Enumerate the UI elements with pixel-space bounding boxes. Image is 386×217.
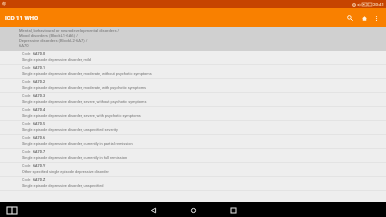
button[interactable]: Code [0,149,386,163]
staticText: 6A70.5 [33,122,46,126]
button[interactable]: Code [0,121,386,135]
staticText: Single episode depressive disorder, mode… [22,71,152,76]
staticText: Code [22,80,31,84]
staticText: 6A70.7 [33,150,46,154]
staticText: Single episode depressive disorder, curr… [22,141,133,146]
button[interactable]: Code [0,51,386,65]
staticText: 6A70.2 [33,80,46,84]
staticText: Single episode depressive disorder, seve… [22,113,141,118]
staticText: Single episode depressive disorder, seve… [22,99,147,104]
button[interactable]: Code [0,79,386,93]
staticText: 6A70.0 [33,52,46,56]
button[interactable]: Home [357,11,371,25]
staticText: Code [22,108,31,112]
staticText: Code [22,150,31,154]
button[interactable]: Split screen [5,203,19,217]
staticText: 20:41 [373,2,384,7]
staticText: Code [22,178,31,182]
button[interactable]: Search [343,11,357,25]
button[interactable]: Back [147,204,159,216]
staticText: Single episode depressive disorder, unsp… [22,127,118,132]
button[interactable]: Code [0,93,386,107]
staticText: 6A70.1 [33,66,46,70]
button[interactable]: Code [0,163,386,177]
staticText: ICD 11 WHO [5,14,39,21]
staticText: 6A70.4 [33,108,46,112]
staticText: 6A70 [19,43,29,48]
staticText: Other specified single episode depressiv… [22,169,109,174]
staticText: 6A70.6 [33,136,46,140]
button[interactable]: Code [0,135,386,149]
staticText: 6A70.Z [33,178,46,182]
staticText: Depressive disorders (BlockL2-6A7) / [19,38,88,43]
staticText: Single episode depressive disorder, mild [22,57,92,62]
staticText: Code [22,66,31,70]
staticText: 6A70.Y [33,164,46,168]
button[interactable]: Recents [227,204,239,216]
staticText: Code [22,136,31,140]
button[interactable]: Code [0,177,386,191]
button[interactable]: Code [0,65,386,79]
staticText: Single episode depressive disorder, mode… [22,85,147,90]
button[interactable]: Code [0,107,386,121]
staticText: Mood disorders (BlockL1-6A6) / [19,33,78,38]
button[interactable]: Home [187,204,199,216]
staticText: Code [22,122,31,126]
staticText: Code [22,52,31,56]
staticText: Code [22,94,31,98]
button[interactable]: More options [371,13,382,24]
staticText: Single episode depressive disorder, curr… [22,155,128,160]
staticText: Mental, behavioural or neurodevelopmenta… [19,28,120,33]
staticText: Code [22,164,31,168]
staticText: 6A70.3 [33,94,46,98]
staticText: Single episode depressive disorder, unsp… [22,183,104,188]
